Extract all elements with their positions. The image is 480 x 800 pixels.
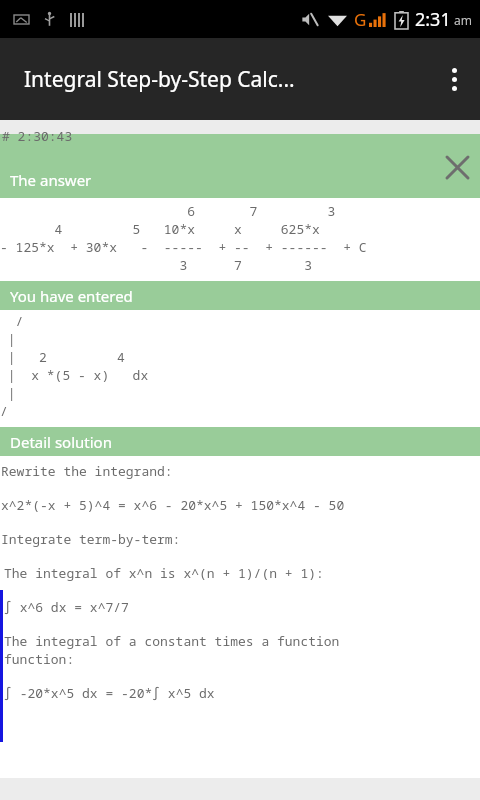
staticText: x^2*(-x + 5)^4 = x^6 - 20*x^5 + 150*x^4 … bbox=[1, 496, 345, 514]
staticText: am bbox=[454, 12, 472, 28]
button[interactable]: # 2:30:43 bbox=[0, 134, 480, 198]
staticText: / bbox=[0, 312, 24, 330]
staticText: # 2:30:43 bbox=[2, 127, 73, 145]
staticText: Integrate term-by-term: bbox=[1, 530, 181, 548]
staticText: | bbox=[0, 330, 16, 348]
staticText: | 2 4 bbox=[0, 348, 125, 366]
staticText: The integral of x^n is x^(n + 1)/(n + 1)… bbox=[4, 564, 324, 582]
staticText: ∫ -20*x^5 dx = -20*∫ x^5 dx bbox=[4, 684, 215, 702]
staticText: 6 7 3 bbox=[0, 202, 336, 220]
staticText: The integral of a constant times a funct… bbox=[4, 632, 340, 650]
staticText: Detail solution bbox=[10, 432, 112, 452]
staticText: | bbox=[0, 384, 16, 402]
button[interactable]: You have entered bbox=[0, 281, 480, 310]
staticText: G bbox=[354, 8, 367, 31]
staticText: Rewrite the integrand: bbox=[1, 462, 173, 480]
staticText: | x *(5 - x) dx bbox=[0, 366, 149, 384]
staticText: 4 5 10*x x 625*x bbox=[0, 220, 320, 238]
button[interactable]: Close bbox=[444, 154, 470, 180]
staticText: 2:31 bbox=[415, 7, 451, 32]
button[interactable]: Detail solution bbox=[0, 427, 480, 456]
staticText: The answer bbox=[10, 170, 92, 190]
button[interactable]: More options bbox=[428, 38, 480, 120]
staticText: ∫ x^6 dx = x^7/7 bbox=[4, 598, 129, 616]
staticText: / bbox=[0, 402, 8, 420]
staticText: 3 7 3 bbox=[0, 256, 312, 274]
staticText: - 125*x + 30*x - ----- + -- + ------ + C bbox=[0, 238, 367, 256]
staticText: Integral Step-by-Step Calc... bbox=[24, 65, 295, 94]
staticText: function: bbox=[4, 650, 75, 668]
staticText: You have entered bbox=[10, 286, 133, 306]
